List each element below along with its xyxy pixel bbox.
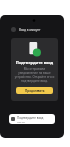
staticText: Мы отправили уведомление на ваше устройс… <box>14 67 55 83</box>
staticText: Вход в аккаунт <box>19 28 41 32</box>
button[interactable]: Account <box>11 27 16 32</box>
staticText: сейчас <box>17 120 26 123</box>
staticText: Подтвердите вход <box>14 60 55 65</box>
button[interactable]: Подтвердите вход <box>9 114 55 124</box>
button[interactable]: Продолжить <box>16 87 53 94</box>
staticText: Продолжить <box>25 89 45 93</box>
staticText: Подтвердите вход <box>17 116 44 120</box>
